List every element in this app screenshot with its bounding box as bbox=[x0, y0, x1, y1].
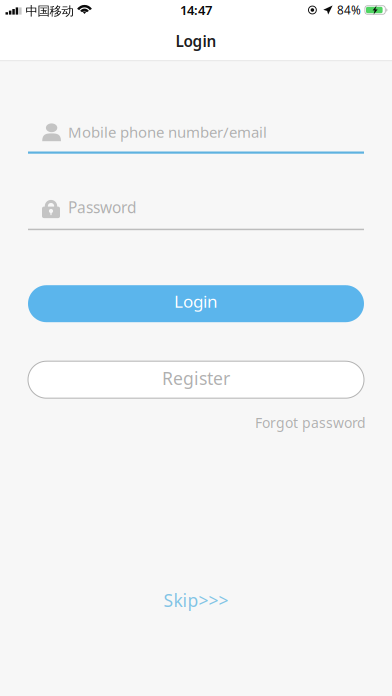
button[interactable]: Forgot password bbox=[255, 413, 366, 432]
staticText: Forgot password bbox=[255, 413, 366, 432]
button[interactable]: Skip>>> bbox=[163, 588, 228, 612]
button[interactable]: Register bbox=[28, 361, 364, 398]
staticText: Password bbox=[68, 197, 137, 218]
staticText: 84% bbox=[337, 2, 361, 18]
staticText: Skip>>> bbox=[163, 588, 228, 612]
button[interactable]: Login bbox=[28, 285, 364, 322]
staticText: Login bbox=[174, 290, 218, 313]
staticText: 中国移动 bbox=[26, 3, 74, 19]
staticText: Mobile phone number/email bbox=[68, 122, 267, 142]
staticText: 14:47 bbox=[180, 1, 212, 19]
staticText: Login bbox=[175, 31, 216, 51]
staticText: Register bbox=[162, 366, 230, 390]
